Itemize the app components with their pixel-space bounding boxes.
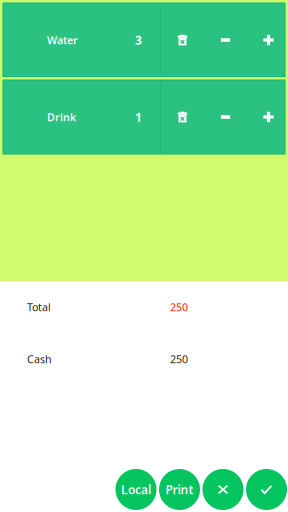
staticText: 250 <box>170 300 188 314</box>
staticText: Print <box>165 481 193 497</box>
button[interactable]: Increase Drink <box>247 80 288 154</box>
staticText: 3 <box>135 32 142 48</box>
staticText: Drink <box>47 110 76 124</box>
button[interactable]: Confirm <box>246 469 287 510</box>
button[interactable]: Increase Water <box>247 3 288 77</box>
button[interactable]: Remove Water <box>161 3 204 77</box>
button[interactable]: Print <box>159 469 200 510</box>
button[interactable]: Decrease Water <box>204 3 247 77</box>
button[interactable]: Local <box>115 469 156 510</box>
staticText: Total <box>27 300 51 314</box>
staticText: Water <box>47 33 78 47</box>
staticText: Cash <box>27 352 52 366</box>
staticText: Local <box>121 481 151 497</box>
button[interactable]: Decrease Drink <box>204 80 247 154</box>
button[interactable]: Remove Drink <box>161 80 204 154</box>
button[interactable]: Cancel <box>202 469 243 510</box>
staticText: 250 <box>170 352 188 366</box>
staticText: 1 <box>135 109 142 125</box>
